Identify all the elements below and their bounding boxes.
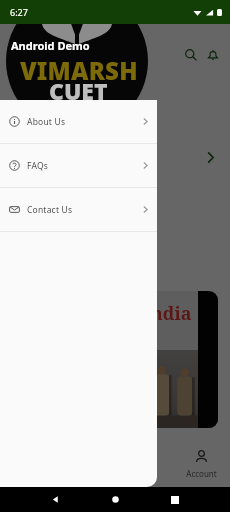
staticText: Android Demo (11, 38, 90, 53)
button[interactable]: Contact Us (0, 188, 157, 232)
staticText: About Us (27, 116, 66, 128)
staticText: Contact Us (27, 204, 73, 216)
button[interactable]: Notifications (202, 40, 224, 70)
staticText: CUET (49, 75, 108, 106)
button[interactable]: Next (200, 147, 220, 167)
button[interactable]: FAQs (0, 144, 157, 188)
staticText: Independence of India (12, 301, 192, 326)
button[interactable]: Independence of India (12, 291, 218, 428)
button[interactable]: Search (180, 40, 202, 70)
button[interactable]: Account (172, 440, 230, 487)
staticText: Account (186, 468, 217, 479)
button[interactable]: About Us (0, 100, 157, 144)
staticText: VIMARSH (20, 54, 138, 87)
staticText: 6:27 (10, 6, 28, 18)
staticText: FAQs (27, 160, 49, 172)
button[interactable]: Open navigation drawer (0, 35, 40, 75)
button[interactable]: Library (114, 440, 172, 487)
